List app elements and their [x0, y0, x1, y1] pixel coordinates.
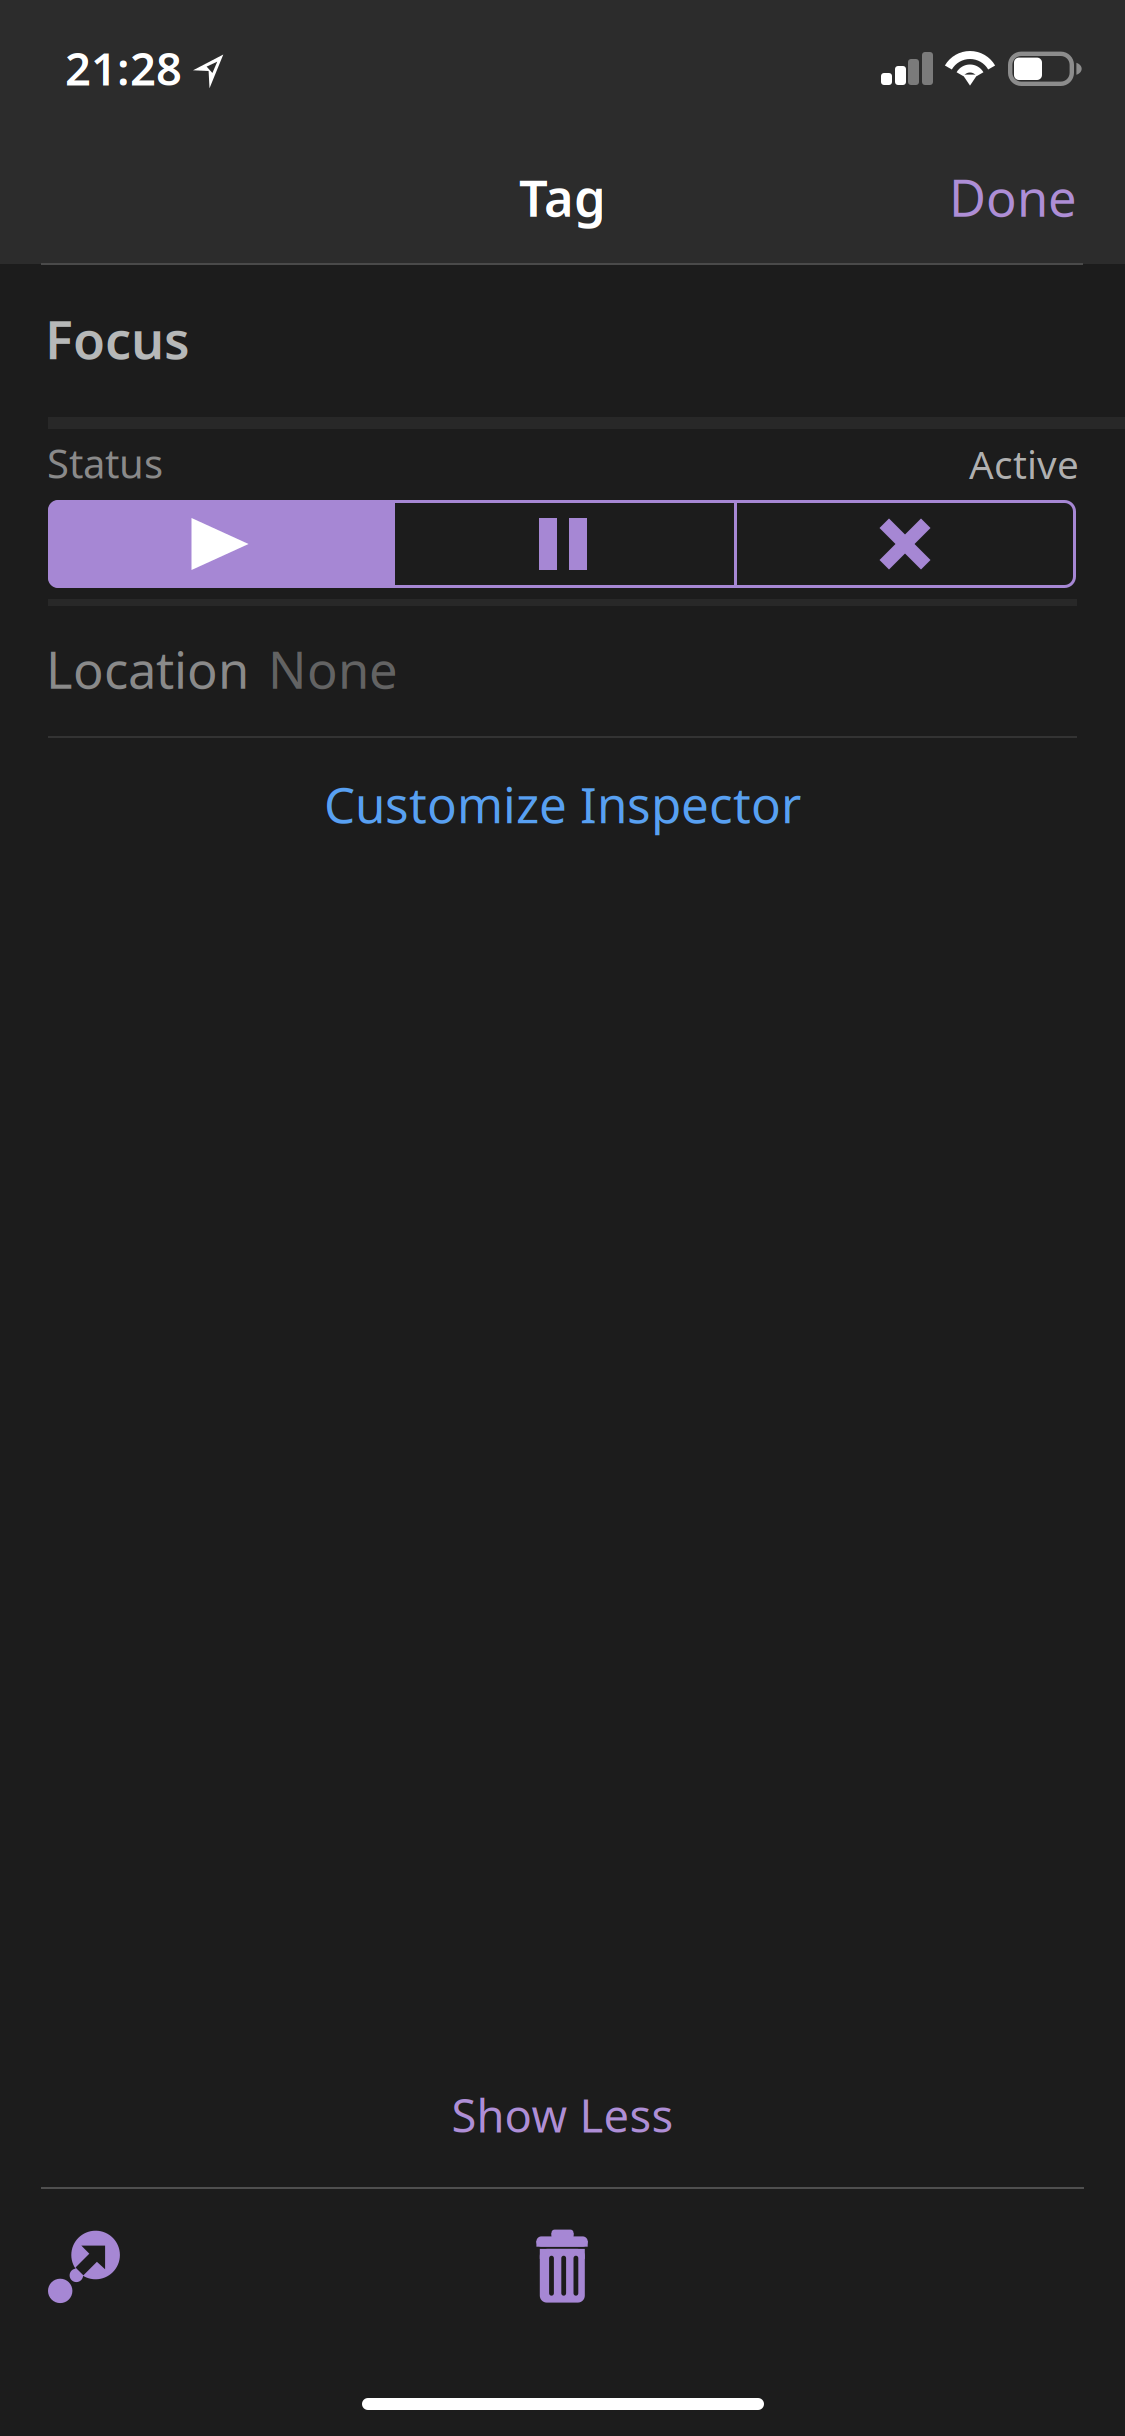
- staticText: Customize Inspector: [324, 771, 801, 837]
- staticText: Location: [46, 635, 249, 703]
- button[interactable]: Delete: [496, 2200, 628, 2332]
- button[interactable]: Location: [48, 606, 1077, 736]
- staticText: Tag: [519, 163, 606, 231]
- staticText: Status: [47, 436, 163, 489]
- staticText: Done: [949, 163, 1077, 231]
- staticText: None: [268, 635, 398, 703]
- staticText: Show Less: [451, 2085, 673, 2145]
- staticText: Focus: [45, 304, 190, 374]
- button[interactable]: Active: [48, 500, 392, 588]
- staticText: 21:28: [65, 38, 182, 98]
- button[interactable]: Done: [877, 137, 1077, 257]
- button[interactable]: Show Less: [0, 2055, 1125, 2175]
- button[interactable]: Focus on this tag: [18, 2201, 150, 2333]
- button[interactable]: On hold: [392, 500, 734, 588]
- button[interactable]: Customize Inspector: [0, 744, 1125, 864]
- button[interactable]: Dropped: [734, 500, 1076, 588]
- staticText: Active: [969, 438, 1079, 490]
